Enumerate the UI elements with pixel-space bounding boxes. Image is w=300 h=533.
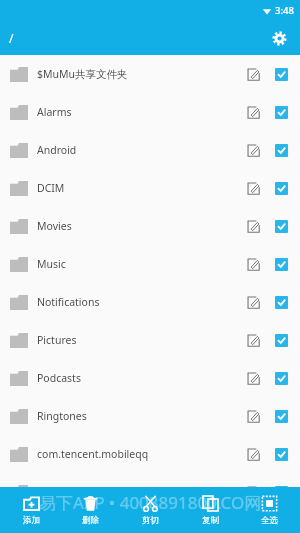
button[interactable]: com.tencent.mobileqq [0,435,300,473]
button[interactable]: Select [268,479,294,505]
button[interactable]: Rename [240,441,266,467]
button[interactable]: Podcasts [0,359,300,397]
button[interactable]: Rename [240,289,266,315]
staticText: Ringtones [37,409,87,423]
button[interactable]: Select [268,365,294,391]
button[interactable]: 剪切 [121,487,179,533]
button[interactable]: Rename [240,327,266,353]
staticText: com.tencent.tmgp.sgame [37,515,164,529]
staticText: com.tencent.mobileqq [37,447,149,461]
button[interactable]: Select [268,441,294,467]
button[interactable]: Rename [240,403,266,429]
button[interactable]: 全选 [240,487,298,533]
button[interactable]: Notifications [0,283,300,321]
button[interactable]: Rename [240,137,266,163]
button[interactable]: Select [268,61,294,87]
button[interactable]: Rename [240,175,266,201]
button[interactable]: Rename [240,479,266,505]
button[interactable]: 复制 [181,487,239,533]
button[interactable]: Select [268,289,294,315]
staticText: 全选 [261,515,278,526]
staticText: DCIM [37,181,65,195]
button[interactable]: Music [0,245,300,283]
button[interactable]: Select [268,327,294,353]
staticText: Pictures [37,333,77,347]
button[interactable]: Ringtones [0,397,300,435]
staticText: Alarms [37,105,72,119]
staticText: 添加 [23,515,40,526]
button[interactable]: Select [268,511,294,533]
staticText: Notifications [37,295,100,309]
button[interactable]: Settings [264,23,294,53]
staticText: 3:48 [275,4,294,17]
button[interactable]: 添加 [2,487,60,533]
staticText: $MuMu共享文件夹 [37,67,128,81]
button[interactable]: Rename [240,99,266,125]
staticText: Movies [37,219,72,233]
staticText: Podcasts [37,371,81,385]
button[interactable]: Select [268,403,294,429]
button[interactable]: Rename [240,365,266,391]
button[interactable]: Android [0,131,300,169]
button[interactable]: $MuMu共享文件夹 [0,55,300,93]
staticText: Music [37,257,66,271]
staticText: com.tencent.tmgp.speedmobile [37,485,195,499]
button[interactable]: com.tencent.tmgp.speedmobile [0,473,300,511]
button[interactable]: Rename [240,213,266,239]
button[interactable]: com.tencent.tmgp.sgame [0,511,300,533]
button[interactable]: Pictures [0,321,300,359]
button[interactable]: Rename [240,61,266,87]
button[interactable]: Select [268,137,294,163]
button[interactable]: Select [268,251,294,277]
staticText: 复制 [202,515,219,526]
staticText: 剪切 [142,515,159,526]
button[interactable]: Select [268,213,294,239]
staticText: 删除 [82,515,99,526]
button[interactable]: Select [268,99,294,125]
button[interactable]: Alarms [0,93,300,131]
button[interactable]: Select [268,175,294,201]
staticText: 易下APP • 4008891800.CO网 [39,491,262,514]
button[interactable]: Rename [240,511,266,533]
button[interactable]: DCIM [0,169,300,207]
staticText: / [9,30,14,46]
staticText: Android [37,143,77,157]
button[interactable]: 删除 [61,487,119,533]
button[interactable]: Movies [0,207,300,245]
button[interactable]: Rename [240,251,266,277]
